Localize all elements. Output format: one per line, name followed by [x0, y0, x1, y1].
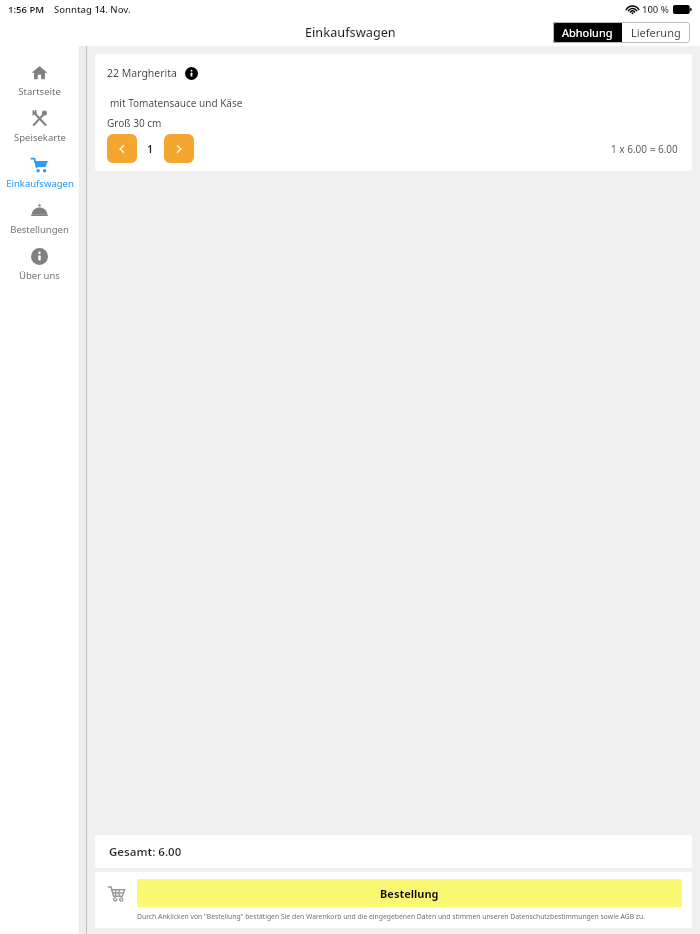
button[interactable]: Startseite	[0, 58, 79, 104]
staticText: mit Tomatensauce und Käse	[110, 96, 243, 110]
button[interactable]: Increase quantity	[164, 134, 194, 163]
button[interactable]: Einkaufswagen	[0, 150, 79, 196]
staticText: Durch Anklicken von "Bestellung" bestäti…	[137, 912, 684, 921]
staticText: Lieferung	[631, 25, 681, 40]
button[interactable]: Bestellungen	[0, 196, 79, 242]
button[interactable]: Info	[185, 67, 198, 80]
staticText: Abholung	[562, 25, 613, 40]
button[interactable]: Lieferung	[622, 22, 690, 43]
staticText: 1 x 6.00 = 6.00	[611, 142, 678, 156]
button[interactable]: Über uns	[0, 242, 79, 288]
staticText: Startseite	[18, 85, 61, 98]
staticText: Gesamt: 6.00	[109, 844, 182, 860]
staticText: 22 Margherita	[107, 66, 177, 80]
staticText: 1	[147, 142, 154, 156]
staticText: Bestellung	[380, 886, 439, 901]
staticText: 1:56 PM	[8, 3, 45, 16]
button[interactable]: Shopping cart	[105, 882, 127, 904]
staticText: Sonntag 14. Nov.	[54, 3, 131, 16]
staticText: Bestellungen	[10, 223, 69, 236]
staticText: Groß 30 cm	[107, 116, 162, 130]
staticText: Einkaufswagen	[6, 177, 74, 190]
staticText: Speisekarte	[14, 131, 66, 144]
button[interactable]: Abholung	[553, 22, 622, 43]
staticText: 100 %	[642, 3, 669, 16]
button[interactable]: Speisekarte	[0, 104, 79, 150]
button[interactable]: Decrease quantity	[107, 134, 137, 163]
staticText: Über uns	[19, 269, 60, 282]
button[interactable]: Bestellung	[137, 879, 682, 907]
staticText: Einkaufswagen	[305, 24, 396, 41]
